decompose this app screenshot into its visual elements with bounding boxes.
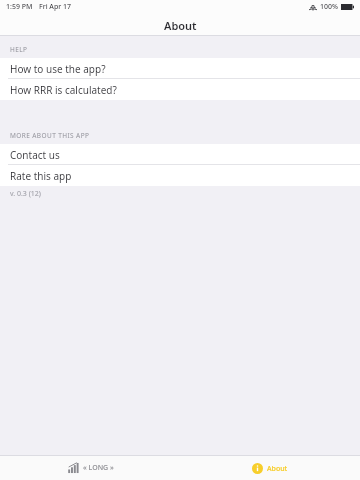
- other: Long term chart: [67, 462, 79, 474]
- button[interactable]: How RRR is calculated?: [0, 79, 360, 100]
- staticText: Contact us: [10, 148, 60, 162]
- button[interactable]: Rate this app: [0, 165, 360, 186]
- staticText: Rate this app: [10, 169, 72, 183]
- staticText: v. 0.3 (12): [10, 189, 41, 199]
- button[interactable]: Contact us: [0, 144, 360, 165]
- staticText: « LONG »: [83, 463, 114, 473]
- button[interactable]: Long term chart: [57, 459, 124, 477]
- staticText: MORE ABOUT THIS APP: [10, 131, 90, 140]
- staticText: Fri Apr 17: [39, 2, 72, 12]
- staticText: How to use the app?: [10, 62, 106, 76]
- staticText: 1:59 PM: [6, 2, 33, 12]
- staticText: About: [267, 464, 288, 474]
- staticText: About: [164, 18, 197, 33]
- other: About: [252, 463, 263, 474]
- button[interactable]: How to use the app?: [0, 58, 360, 79]
- staticText: How RRR is calculated?: [10, 83, 117, 97]
- staticText: HELP: [10, 45, 28, 54]
- button[interactable]: About: [242, 460, 298, 477]
- staticText: 100%: [320, 2, 338, 12]
